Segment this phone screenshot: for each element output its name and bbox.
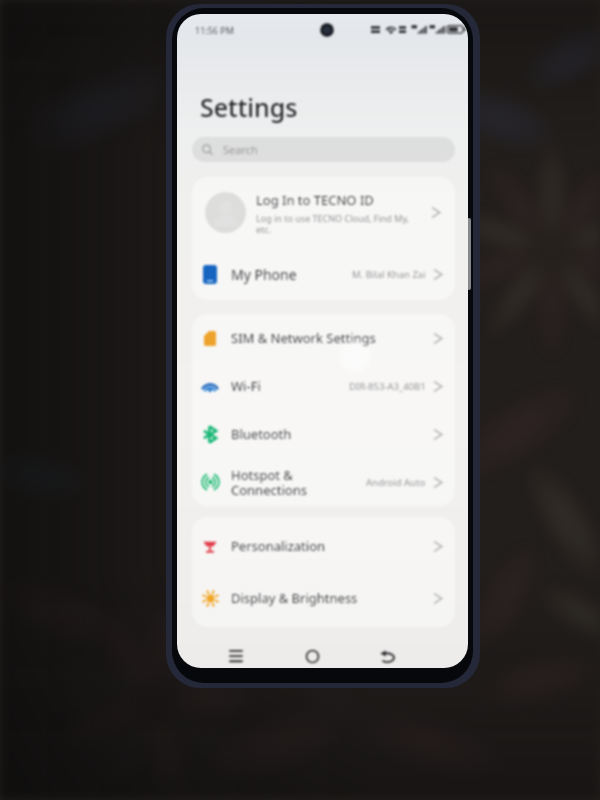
staticText: Log In to TECNO ID [256, 191, 374, 209]
staticText: Display & Brightness [231, 589, 358, 607]
button[interactable]: Recents [218, 638, 254, 668]
button[interactable]: Personalization [192, 520, 455, 572]
staticText: Wi-Fi [231, 377, 261, 395]
staticText: DIR-853-A3_40B1 [349, 380, 426, 393]
button[interactable]: Back [369, 638, 405, 668]
staticText: My Phone [231, 265, 297, 284]
button[interactable]: SIM & Network Settings [192, 314, 455, 362]
button[interactable]: Wi-Fi [192, 362, 455, 410]
staticText: Android Auto [366, 476, 426, 489]
staticText: Bluetooth [231, 425, 292, 443]
button[interactable]: Log In to TECNO ID [192, 177, 455, 248]
staticText: 11:56 PM [195, 24, 234, 36]
staticText: M. Bilal Khan Zai [352, 268, 426, 281]
button[interactable]: Home [294, 638, 330, 668]
button[interactable]: Display & Brightness [192, 572, 455, 624]
staticText: Personalization [231, 537, 326, 555]
button[interactable]: Search [192, 137, 455, 162]
staticText: Settings [200, 90, 298, 124]
button[interactable]: Bluetooth [192, 410, 455, 458]
button[interactable]: Hotspot & Connections [192, 458, 455, 506]
staticText: SIM & Network Settings [231, 329, 376, 347]
staticText: Log in to use TECNO Cloud, Find My, etc. [256, 212, 410, 235]
staticText: Search [223, 142, 258, 157]
staticText: Hotspot & Connections [231, 466, 307, 499]
button[interactable]: My Phone [192, 248, 455, 300]
